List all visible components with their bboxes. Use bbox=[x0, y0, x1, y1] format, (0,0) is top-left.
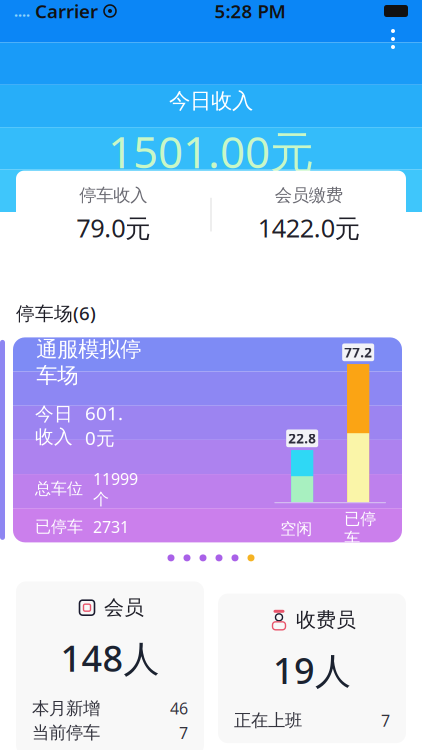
staticText: 正在上班 bbox=[234, 710, 302, 731]
staticText: 本月新增 bbox=[32, 698, 100, 719]
staticText: 1422.0元 bbox=[258, 211, 360, 245]
staticText: 已停车 bbox=[35, 517, 83, 537]
staticText: 77.2 bbox=[344, 343, 372, 361]
staticText bbox=[98, 0, 104, 26]
staticText: 19人 bbox=[273, 646, 351, 694]
staticText: 2731 bbox=[93, 516, 129, 537]
staticText: 5:28 PM bbox=[214, 0, 285, 23]
staticText: 1501.00元 bbox=[108, 122, 314, 180]
staticText: 停车场(6) bbox=[16, 301, 96, 325]
staticText: 今日收入 bbox=[169, 88, 253, 114]
staticText: 7 bbox=[381, 710, 390, 731]
staticText: .... bbox=[14, 1, 30, 21]
button[interactable]: 通服模拟停车场 bbox=[13, 337, 402, 542]
staticText: 会员 bbox=[104, 595, 144, 620]
staticText: Carrier bbox=[30, 0, 98, 23]
button[interactable]: 收费员 bbox=[218, 593, 406, 743]
staticText: 总车位 bbox=[35, 479, 83, 498]
staticText: 当前停车 bbox=[32, 722, 100, 743]
staticText: 收费员 bbox=[296, 607, 356, 632]
staticText: 今日收入 bbox=[35, 402, 73, 448]
staticText: 46 bbox=[170, 698, 188, 719]
staticText: 通服模拟停车场 bbox=[36, 336, 141, 389]
staticText: 7 bbox=[179, 722, 188, 743]
staticText: 停车收入 bbox=[79, 185, 147, 206]
staticText: 空闲 bbox=[280, 519, 312, 539]
staticText: 148人 bbox=[60, 634, 159, 682]
staticText: 22.8 bbox=[288, 429, 316, 447]
staticText: 601.0元 bbox=[85, 401, 123, 450]
staticText: 会员缴费 bbox=[275, 185, 343, 206]
staticText: 11999个 bbox=[93, 468, 138, 509]
button[interactable]: 会员 bbox=[16, 581, 204, 750]
button[interactable]: More options bbox=[376, 22, 410, 56]
staticText: 已停车 bbox=[344, 509, 376, 548]
staticText: 79.0元 bbox=[76, 211, 150, 245]
